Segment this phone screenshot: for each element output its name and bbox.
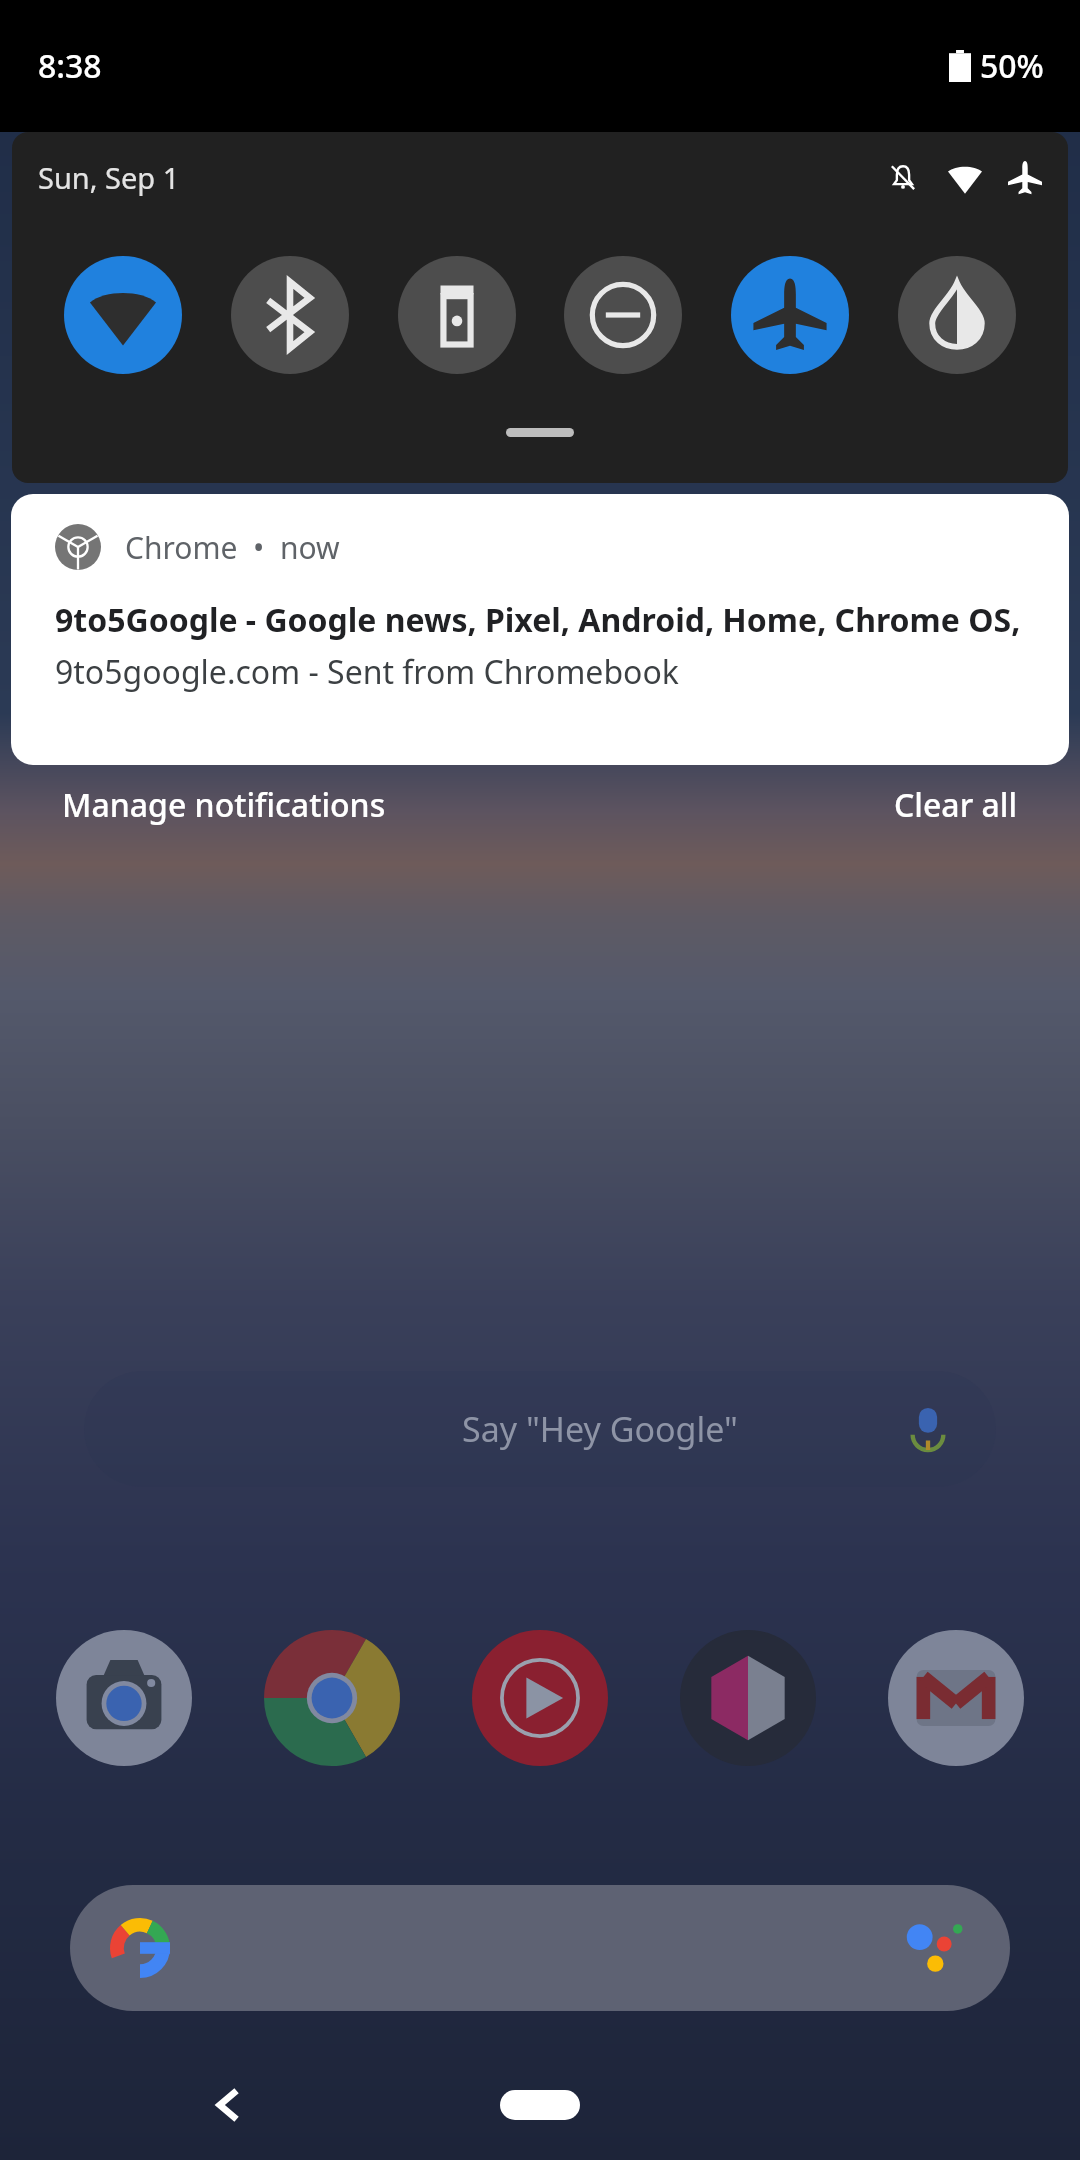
button[interactable]: Dark theme — [898, 256, 1016, 374]
staticText: Sun, Sep 1 — [38, 158, 180, 197]
staticText: Say "Hey Google" — [462, 1406, 738, 1452]
button[interactable]: Wi-Fi — [64, 256, 182, 374]
staticText: Manage notifications — [62, 783, 386, 827]
button[interactable]: Camera — [56, 1630, 192, 1766]
staticText: 9to5google.com - Sent from Chromebook — [55, 650, 679, 694]
staticText: 8:38 — [38, 44, 102, 88]
button[interactable]: Do not disturb — [564, 256, 682, 374]
other: Airplane mode — [1008, 161, 1042, 195]
button[interactable]: Back — [208, 2084, 250, 2126]
button[interactable]: Play Store — [680, 1630, 816, 1766]
button[interactable]: Bluetooth — [231, 256, 349, 374]
staticText: Clear all — [894, 783, 1018, 827]
button[interactable]: Clear all — [890, 779, 1022, 831]
staticText: 50% — [980, 44, 1044, 88]
button[interactable]: Flashlight — [398, 256, 516, 374]
other: Wifi — [948, 161, 982, 195]
button[interactable]: Chrome • now — [11, 494, 1069, 765]
button[interactable]: YouTube Music — [472, 1630, 608, 1766]
other: Notifications silenced — [886, 161, 920, 195]
staticText: 9to5Google - Google news, Pixel, Android… — [55, 598, 1025, 642]
button[interactable]: Chrome — [264, 1630, 400, 1766]
button[interactable]: Home — [500, 2090, 580, 2120]
button[interactable]: Manage notifications — [58, 779, 390, 831]
button[interactable]: Airplane mode — [731, 256, 849, 374]
button[interactable]: Gmail — [888, 1630, 1024, 1766]
button[interactable] — [70, 1885, 1010, 2011]
button[interactable]: Say "Hey Google" — [84, 1371, 996, 1487]
staticText: Chrome • now — [125, 527, 340, 568]
